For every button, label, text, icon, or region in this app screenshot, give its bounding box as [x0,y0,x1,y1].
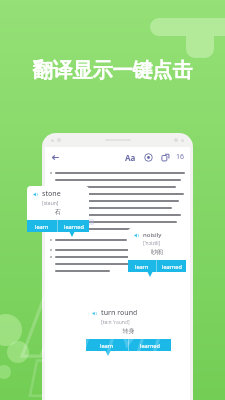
button[interactable]: Play pronunciation of stone [32,191,39,198]
staticText: stone [42,189,61,199]
staticText: [tə:n 'raund] [101,319,166,326]
staticText: [stəun] [42,200,84,207]
staticText: Aa [125,152,136,163]
staticText: turn round [101,308,138,318]
button[interactable]: learn [86,339,128,351]
staticText: noisily [143,231,162,239]
button[interactable]: Play pronunciation of turn round [91,310,98,317]
button[interactable]: learned [157,260,186,272]
staticText: 转身 [91,327,166,335]
staticText: 翻译显示一键点击 [0,58,225,83]
staticText: ['nɔizili] [143,240,181,247]
staticText: learn [100,342,114,349]
button[interactable]: Aa [125,152,136,163]
staticText: learned [64,223,84,230]
button[interactable]: Back [50,152,61,163]
staticText: learned [140,342,160,349]
button[interactable]: Notes [161,153,170,162]
staticText: learn [35,223,49,230]
button[interactable]: learn [27,220,57,232]
staticText: 石 [32,208,84,216]
button[interactable]: learned [129,339,171,351]
button[interactable]: Display settings [144,153,153,162]
button[interactable]: learn [128,260,156,272]
staticText: learned [162,263,182,270]
button[interactable]: 16 [176,152,185,162]
staticText: 吵闹 [133,248,181,256]
button[interactable]: learned [58,220,89,232]
staticText: learn [135,263,149,270]
button[interactable]: Play pronunciation of noisily [133,232,140,239]
